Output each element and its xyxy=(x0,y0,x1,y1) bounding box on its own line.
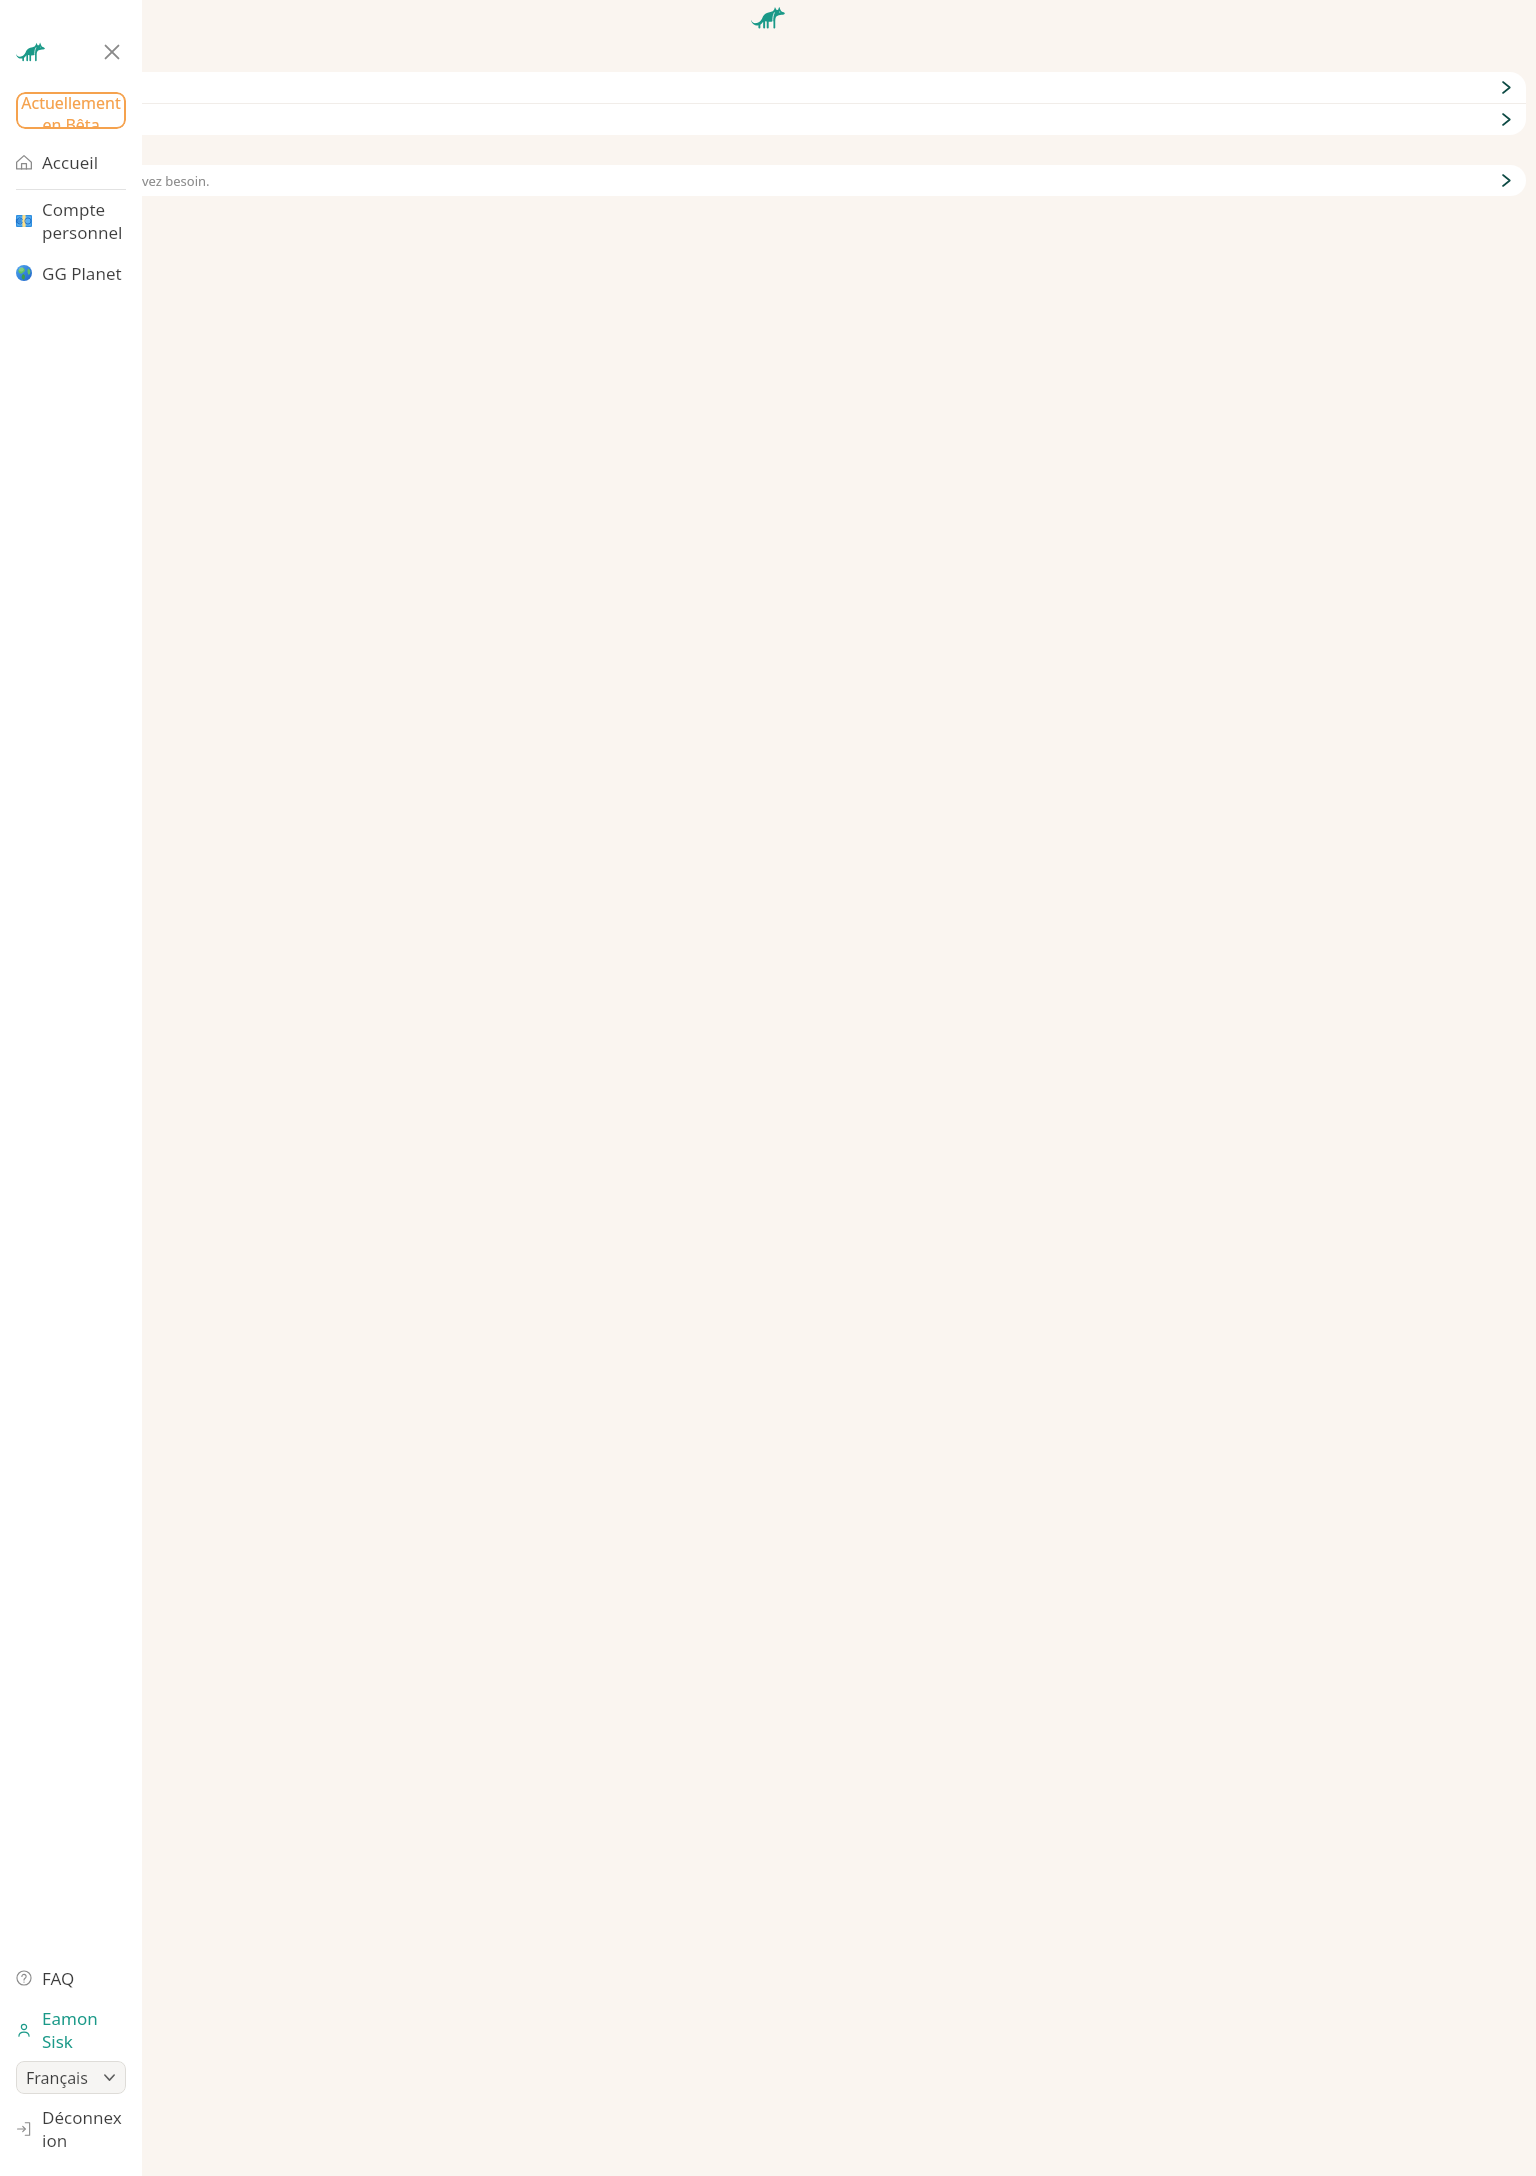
staticText: Français xyxy=(26,2067,88,2089)
button[interactable]: Actuellement en Bêta xyxy=(16,92,126,129)
button[interactable]: Eamon Sisk xyxy=(16,2007,126,2053)
staticText: Eamon Sisk xyxy=(42,2007,126,2053)
button[interactable]: Français xyxy=(16,2061,126,2094)
staticText: vez besoin. xyxy=(142,172,210,190)
staticText: GG Planet xyxy=(42,262,122,285)
button[interactable]: Déconnexion xyxy=(16,2106,126,2152)
button[interactable]: FAQ xyxy=(16,1955,126,2001)
button[interactable] xyxy=(10,72,1526,103)
button[interactable] xyxy=(10,104,1526,135)
staticText: Compte personnel xyxy=(42,198,126,244)
button[interactable]: Accueil xyxy=(16,139,126,185)
staticText: FAQ xyxy=(42,1967,75,1990)
staticText: Actuellement en Bêta xyxy=(16,92,126,129)
button[interactable]: Close menu xyxy=(98,38,126,66)
staticText: Accueil xyxy=(42,151,99,174)
button[interactable]: vez besoin. xyxy=(10,165,1526,196)
button[interactable]: GG Planet xyxy=(16,250,126,296)
staticText: Déconnexion xyxy=(42,2106,126,2152)
button[interactable]: Compte personnel xyxy=(16,198,126,244)
